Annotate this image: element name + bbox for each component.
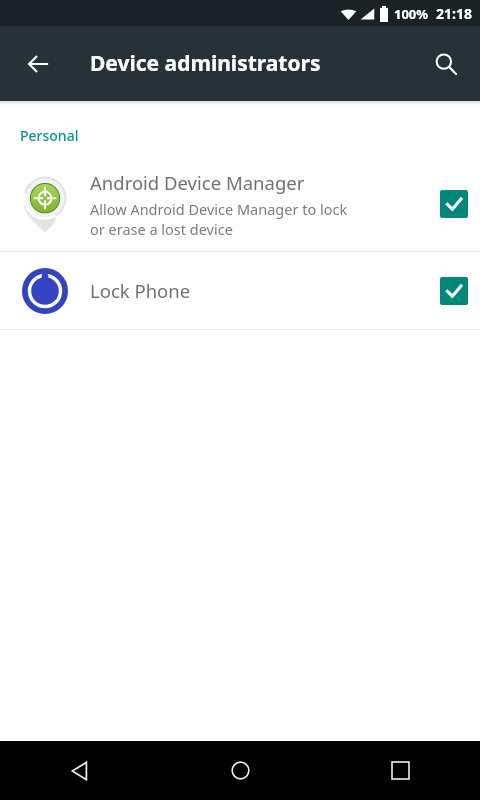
button[interactable]: Lock Phone [0,252,480,329]
button[interactable]: Back [0,741,160,800]
button[interactable]: Recent apps [320,741,480,800]
button[interactable]: Home [160,741,320,800]
staticText: 100% [394,5,429,23]
button[interactable]: Android Device Manager [0,157,480,251]
button[interactable]: Back [14,40,62,88]
staticText: Android Device Manager [90,170,305,195]
button[interactable]: Android Device Manager enabled [428,157,480,251]
staticText: Device administrators [90,49,321,78]
button[interactable]: Search [422,40,470,88]
staticText: 21:18 [436,4,472,23]
button[interactable]: Lock Phone enabled [428,252,480,329]
staticText: Allow Android Device Manager to lock or … [90,199,348,239]
staticText: Lock Phone [90,278,191,303]
staticText: Personal [20,126,79,145]
